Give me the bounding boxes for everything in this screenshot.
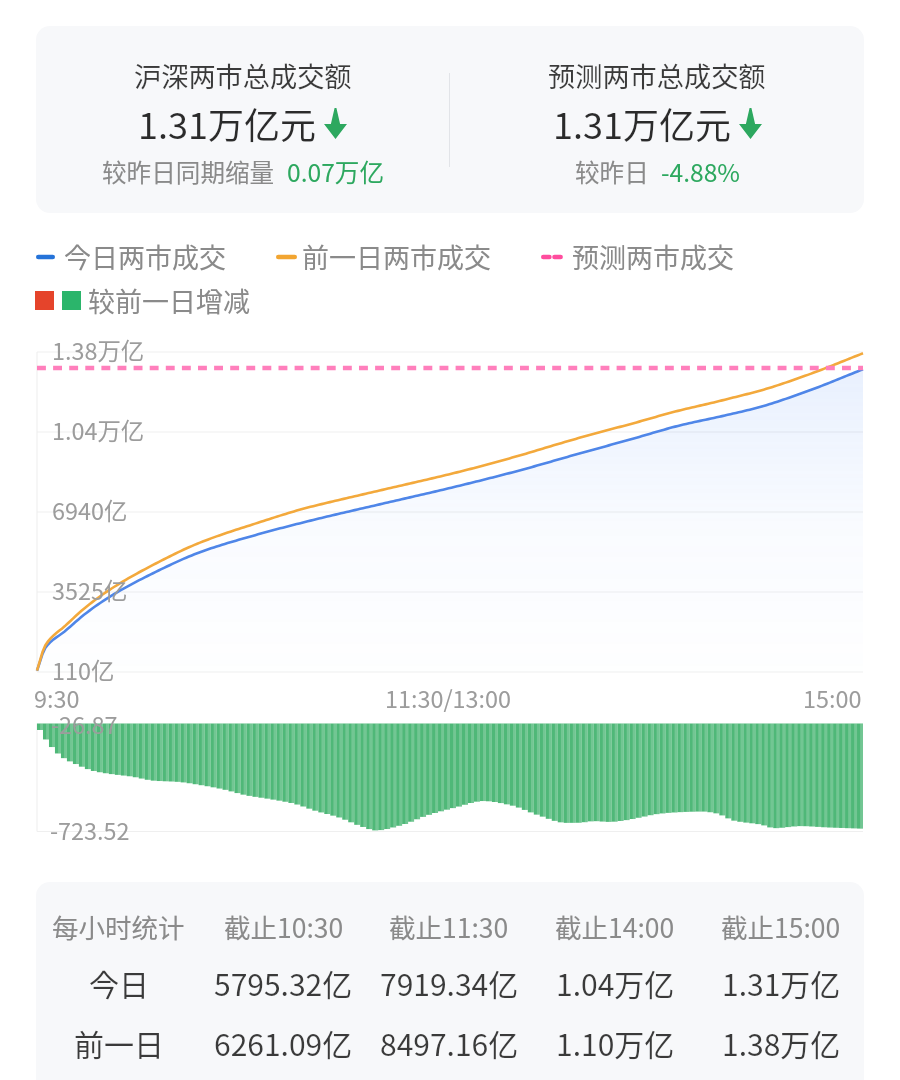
button[interactable]: 较前一日增减 xyxy=(35,281,250,320)
staticText: 今日 xyxy=(89,961,149,1004)
staticText: 9:30 xyxy=(34,681,80,715)
staticText: 5795.32亿 xyxy=(214,961,353,1004)
staticText: -723.52 xyxy=(50,813,130,847)
staticText: 1.31万亿元 xyxy=(138,97,316,149)
button[interactable]: 1.04万亿 xyxy=(532,961,698,1004)
staticText: 11:30/13:00 xyxy=(385,681,512,715)
button[interactable]: 8497.16亿 xyxy=(366,1021,532,1064)
button[interactable]: 6261.09亿 xyxy=(201,1021,366,1064)
staticText: 截止10:30 xyxy=(224,907,344,945)
staticText: 较昨日 xyxy=(575,153,649,189)
staticText: 预测两市总成交额 xyxy=(548,55,766,94)
staticText: 6261.09亿 xyxy=(214,1021,353,1064)
button[interactable]: 截止14:00 xyxy=(532,907,698,945)
button[interactable]: 预测两市总成交额 xyxy=(450,26,864,213)
button[interactable]: 1.31万亿 xyxy=(698,961,864,1004)
button[interactable]: 前一日 xyxy=(36,1021,201,1064)
staticText: 每小时统计 xyxy=(52,907,185,945)
button[interactable]: 截止11:30 xyxy=(366,907,532,945)
staticText: 3525亿 xyxy=(52,573,128,607)
staticText: 沪深两市总成交额 xyxy=(134,55,352,94)
staticText: 截止15:00 xyxy=(721,907,841,945)
staticText: -4.88% xyxy=(661,153,740,189)
button[interactable]: 5795.32亿 xyxy=(201,961,366,1004)
staticText: 较昨日同期缩量 xyxy=(102,153,275,189)
staticText: 较前一日增减 xyxy=(88,281,250,320)
staticText: 截止11:30 xyxy=(389,907,509,945)
button[interactable]: 每小时统计 xyxy=(36,882,864,1080)
button[interactable]: 每小时统计 xyxy=(36,907,201,945)
staticText: 前一日两市成交 xyxy=(302,237,491,276)
staticText: -26.87 xyxy=(51,707,118,741)
button[interactable]: 1.10万亿 xyxy=(532,1021,698,1064)
staticText: 1.38万亿 xyxy=(722,1021,841,1064)
staticText: 1.31万亿元 xyxy=(553,97,731,149)
button[interactable]: 今日 xyxy=(36,961,201,1004)
button[interactable]: 截止15:00 xyxy=(698,907,864,945)
staticText: 1.04万亿 xyxy=(52,413,145,447)
button[interactable]: 7919.34亿 xyxy=(366,961,532,1004)
button[interactable]: 沪深两市总成交额 xyxy=(36,26,449,213)
staticText: 8497.16亿 xyxy=(380,1021,519,1064)
staticText: 1.38万亿 xyxy=(52,333,145,367)
staticText: 1.04万亿 xyxy=(556,961,675,1004)
staticText: 预测两市成交 xyxy=(572,237,734,276)
button[interactable]: 1.38万亿 xyxy=(698,1021,864,1064)
staticText: 110亿 xyxy=(52,653,115,687)
staticText: 今日两市成交 xyxy=(64,237,226,276)
staticText: 7919.34亿 xyxy=(380,961,519,1004)
staticText: 1.10万亿 xyxy=(556,1021,675,1064)
button[interactable]: 沪深两市总成交额 xyxy=(36,26,864,213)
staticText: 15:00 xyxy=(803,681,862,715)
staticText: 6940亿 xyxy=(52,493,128,527)
button[interactable]: 截止10:30 xyxy=(201,907,366,945)
button[interactable]: 今日两市成交 xyxy=(36,237,734,276)
staticText: 截止14:00 xyxy=(555,907,675,945)
staticText: 前一日 xyxy=(74,1021,164,1064)
staticText: 1.31万亿 xyxy=(722,961,841,1004)
staticText: 0.07万亿 xyxy=(287,153,384,189)
